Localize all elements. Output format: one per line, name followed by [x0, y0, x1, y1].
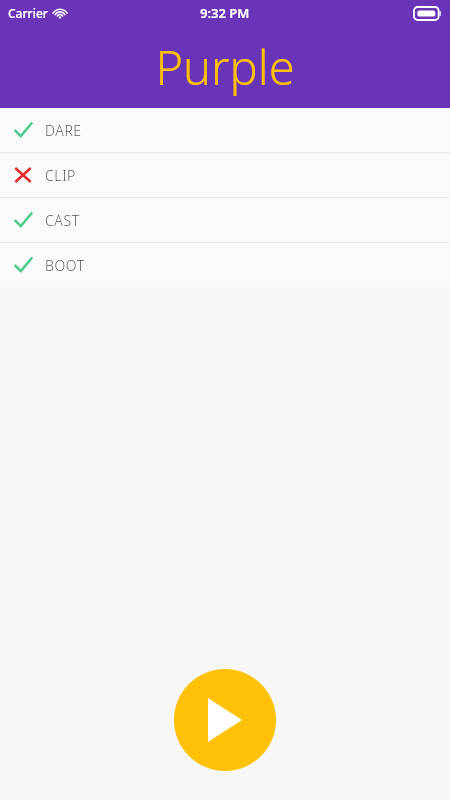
- button[interactable]: Play: [174, 669, 276, 771]
- staticText: BOOT: [45, 256, 85, 275]
- staticText: 9:32 PM: [200, 4, 250, 22]
- button[interactable]: CAST: [0, 198, 450, 242]
- staticText: CAST: [45, 211, 80, 230]
- button[interactable]: BOOT: [0, 243, 450, 287]
- button[interactable]: CLIP: [0, 153, 450, 197]
- staticText: DARE: [45, 121, 82, 140]
- staticText: Purple: [155, 35, 295, 99]
- staticText: Carrier: [8, 5, 48, 21]
- staticText: CLIP: [45, 166, 76, 185]
- button[interactable]: DARE: [0, 108, 450, 152]
